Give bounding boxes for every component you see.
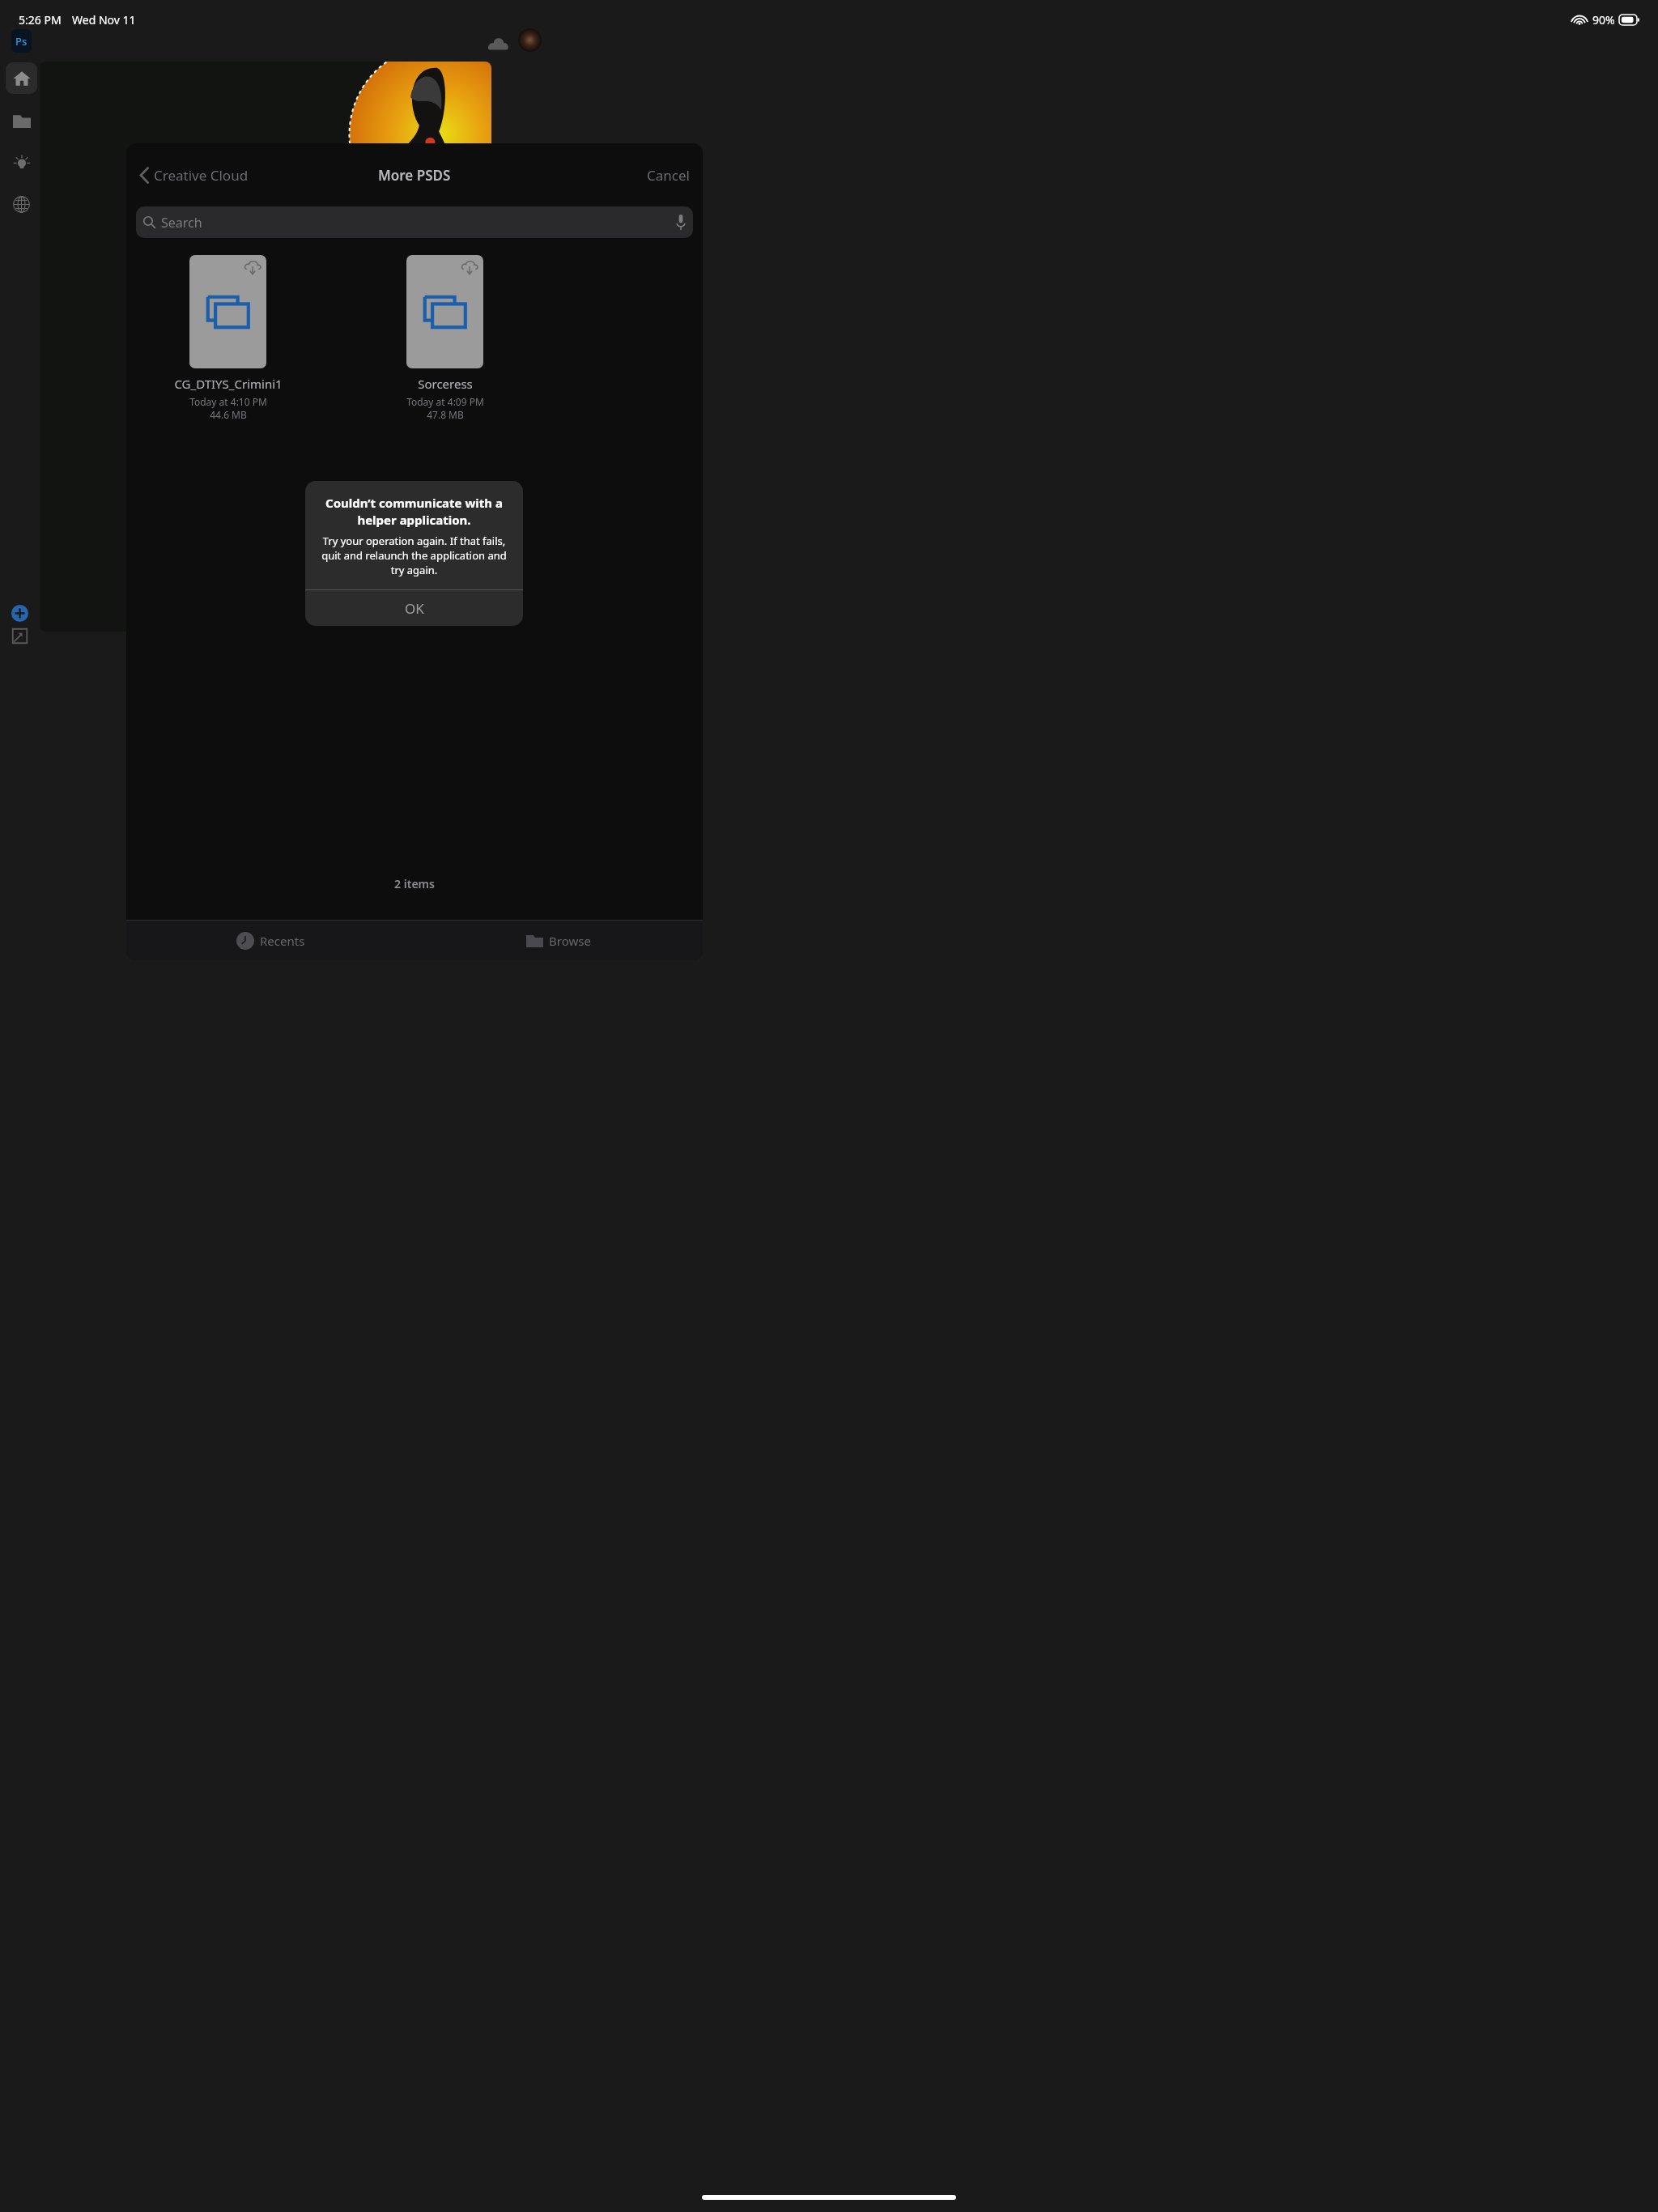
staticText: 90% bbox=[1592, 12, 1615, 28]
button[interactable]: Photoshop bbox=[11, 29, 32, 53]
staticText: 2 items bbox=[126, 876, 703, 891]
button[interactable]: OK bbox=[305, 590, 523, 626]
staticText: Ps bbox=[15, 34, 28, 49]
button[interactable]: Profile bbox=[518, 28, 542, 52]
button[interactable]: Home bbox=[6, 62, 37, 94]
button[interactable]: Your files bbox=[6, 104, 37, 136]
staticText: Recents bbox=[260, 933, 305, 949]
button[interactable]: Search bbox=[136, 206, 693, 238]
staticText: Browse bbox=[549, 933, 591, 949]
button[interactable]: Community bbox=[6, 189, 37, 220]
staticText: Today at 4:10 PM bbox=[189, 395, 267, 408]
button[interactable]: Recents bbox=[126, 921, 414, 960]
staticText: 44.6 MB bbox=[210, 408, 247, 421]
staticText: More PSDS bbox=[378, 166, 451, 185]
staticText: CG_DTIYS_Crimini1 bbox=[174, 376, 283, 392]
button[interactable]: Expand bbox=[7, 623, 32, 648]
staticText: Sorceress bbox=[418, 376, 473, 392]
staticText: OK bbox=[405, 599, 424, 618]
staticText: Search bbox=[161, 214, 202, 232]
staticText: Wed Nov 11 bbox=[72, 12, 136, 28]
staticText: Couldn’t communicate with a helper appli… bbox=[317, 495, 512, 529]
button[interactable]: Add bbox=[7, 601, 32, 625]
button[interactable]: Browse bbox=[414, 921, 703, 960]
staticText: 47.8 MB bbox=[427, 408, 464, 421]
button[interactable]: Sorceress bbox=[370, 255, 520, 421]
staticText: Today at 4:09 PM bbox=[406, 395, 484, 408]
staticText: Cancel bbox=[647, 166, 690, 185]
button[interactable]: Cancel bbox=[644, 161, 693, 189]
button[interactable]: Creative Cloud bbox=[136, 161, 252, 189]
staticText: Creative Cloud bbox=[154, 166, 249, 185]
button[interactable]: Cloud sync bbox=[483, 29, 512, 58]
staticText: 5:26 PM bbox=[19, 12, 62, 28]
button[interactable]: CG_DTIYS_Crimini1 bbox=[153, 255, 303, 421]
staticText: Try your operation again. If that fails,… bbox=[313, 534, 515, 577]
button[interactable]: Discover bbox=[6, 147, 37, 178]
